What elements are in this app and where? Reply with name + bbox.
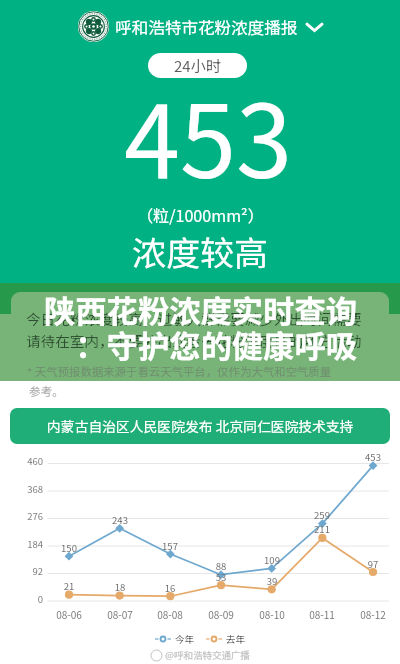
staticText: 08-09 bbox=[196, 607, 246, 621]
staticText: 88 bbox=[196, 559, 246, 573]
staticText: （粒/1000mm²） bbox=[137, 203, 264, 226]
staticText: 157 bbox=[145, 539, 195, 553]
staticText: ：守护您的健康呼吸 bbox=[0, 322, 357, 367]
staticText: 259 bbox=[297, 508, 347, 522]
staticText: 39 bbox=[247, 574, 297, 588]
staticText: 陕西花粉浓度实时查询 bbox=[0, 287, 357, 332]
button[interactable]: 呼和浩特市花粉浓度播报 bbox=[78, 11, 322, 42]
staticText: 浓度较高 bbox=[132, 227, 268, 276]
staticText: 今年 bbox=[175, 632, 195, 646]
staticText: 184 bbox=[1, 537, 43, 551]
staticText: 150 bbox=[44, 541, 94, 555]
staticText: 53 bbox=[196, 570, 246, 584]
staticText: 08-12 bbox=[348, 607, 398, 621]
other: 选择城市 bbox=[307, 20, 322, 34]
staticText: 请待在室内，不要外出或者去花粉浓度低的地方活动 bbox=[26, 330, 362, 351]
staticText: 呼和浩特市花粉浓度播报 bbox=[115, 15, 298, 39]
staticText: 97 bbox=[348, 557, 398, 571]
staticText: 今日花粉浓度较高，过敏人群需要减少外出时间需要 bbox=[26, 308, 362, 329]
staticText: 0 bbox=[1, 592, 43, 606]
button[interactable]: 24小时 bbox=[148, 53, 247, 78]
staticText: 参考。 bbox=[29, 383, 64, 400]
staticText: 16 bbox=[145, 581, 195, 595]
staticText: 去年 bbox=[226, 632, 246, 646]
staticText: 18 bbox=[95, 580, 145, 594]
staticText: 08-10 bbox=[247, 607, 297, 621]
staticText: 92 bbox=[1, 564, 43, 578]
staticText: 460 bbox=[1, 454, 43, 468]
staticText: 453 bbox=[124, 61, 293, 207]
staticText: 08-07 bbox=[95, 607, 145, 621]
staticText: 24小时 bbox=[174, 55, 221, 77]
staticText: 453 bbox=[348, 450, 398, 464]
button[interactable]: 内蒙古自治区人民医院发布 北京同仁医院技术支持 bbox=[10, 408, 390, 444]
staticText: 08-08 bbox=[145, 607, 195, 621]
staticText: 21 bbox=[44, 579, 94, 593]
staticText: 109 bbox=[247, 553, 297, 567]
staticText: * 天气预报数据来源于看云天气平台，仅作为大气和空气质量 bbox=[27, 363, 332, 380]
staticText: 08-11 bbox=[297, 607, 347, 621]
button[interactable]: 今年 bbox=[155, 631, 195, 646]
button[interactable]: 去年 bbox=[206, 631, 246, 646]
staticText: 243 bbox=[95, 513, 145, 527]
staticText: 368 bbox=[1, 482, 43, 496]
staticText: 276 bbox=[1, 509, 43, 523]
staticText: 211 bbox=[297, 522, 347, 536]
staticText: 内蒙古自治区人民医院发布 北京同仁医院技术支持 bbox=[47, 416, 354, 436]
staticText: @呼和浩特交通广播 bbox=[165, 648, 250, 662]
staticText: 08-06 bbox=[44, 607, 94, 621]
